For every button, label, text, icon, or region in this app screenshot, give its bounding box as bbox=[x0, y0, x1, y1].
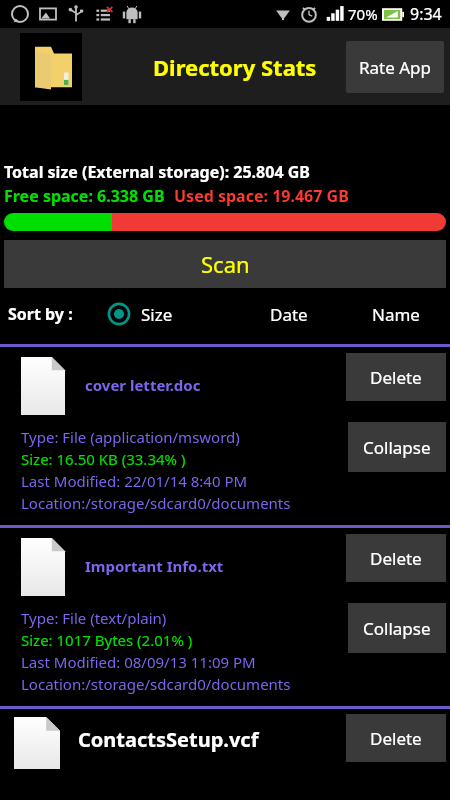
button[interactable]: Date bbox=[264, 303, 314, 326]
staticText: Delete bbox=[370, 547, 422, 570]
button[interactable]: Name bbox=[366, 303, 426, 326]
button[interactable]: Scan bbox=[4, 240, 446, 288]
button[interactable]: Delete bbox=[346, 534, 446, 582]
button[interactable]: cover letter.doc bbox=[0, 347, 450, 525]
staticText: Total size (External storage): 25.804 GB bbox=[4, 161, 310, 183]
staticText: 9:34 bbox=[410, 3, 442, 25]
staticText: Location:/storage/sdcard0/documents bbox=[21, 493, 291, 513]
staticText: 70% bbox=[348, 4, 378, 24]
staticText: Rate App bbox=[359, 56, 432, 79]
staticText: Name bbox=[372, 303, 420, 326]
button[interactable]: Collapse bbox=[348, 422, 446, 472]
staticText: Important Info.txt bbox=[85, 556, 224, 576]
staticText: Used space: 19.467 GB bbox=[174, 185, 349, 207]
staticText: Delete bbox=[370, 727, 422, 750]
staticText: Last Modified: 08/09/13 11:09 PM bbox=[21, 652, 256, 672]
button[interactable]: Size bbox=[107, 302, 173, 326]
staticText: Date bbox=[270, 303, 308, 326]
staticText: Free space: 6.338 GB bbox=[4, 185, 165, 207]
staticText: Directory Stats bbox=[153, 52, 317, 82]
button[interactable]: Delete bbox=[346, 353, 446, 401]
staticText: Scan bbox=[201, 249, 250, 279]
staticText: Delete bbox=[370, 366, 422, 389]
staticText: Type: File (text/plain) bbox=[21, 608, 167, 628]
staticText: Collapse bbox=[363, 436, 431, 459]
button[interactable]: Collapse bbox=[348, 603, 446, 653]
staticText: Last Modified: 22/01/14 8:40 PM bbox=[21, 471, 248, 491]
button[interactable]: ContactsSetup.vcf bbox=[0, 709, 450, 769]
staticText: Sort by : bbox=[8, 303, 73, 325]
staticText: cover letter.doc bbox=[85, 375, 201, 395]
button[interactable]: Rate App bbox=[346, 41, 444, 93]
staticText: Type: File (application/msword) bbox=[21, 427, 240, 447]
button[interactable]: Delete bbox=[346, 714, 446, 762]
button[interactable]: Important Info.txt bbox=[0, 528, 450, 706]
staticText: Size: 16.50 KB (33.34% ) bbox=[21, 449, 186, 469]
button[interactable]: App icon bbox=[20, 33, 82, 101]
staticText: ContactsSetup.vcf bbox=[78, 726, 259, 753]
staticText: Size bbox=[141, 303, 173, 326]
staticText: Size: 1017 Bytes (2.01% ) bbox=[21, 630, 193, 650]
staticText: Collapse bbox=[363, 617, 431, 640]
staticText: Location:/storage/sdcard0/documents bbox=[21, 674, 291, 694]
